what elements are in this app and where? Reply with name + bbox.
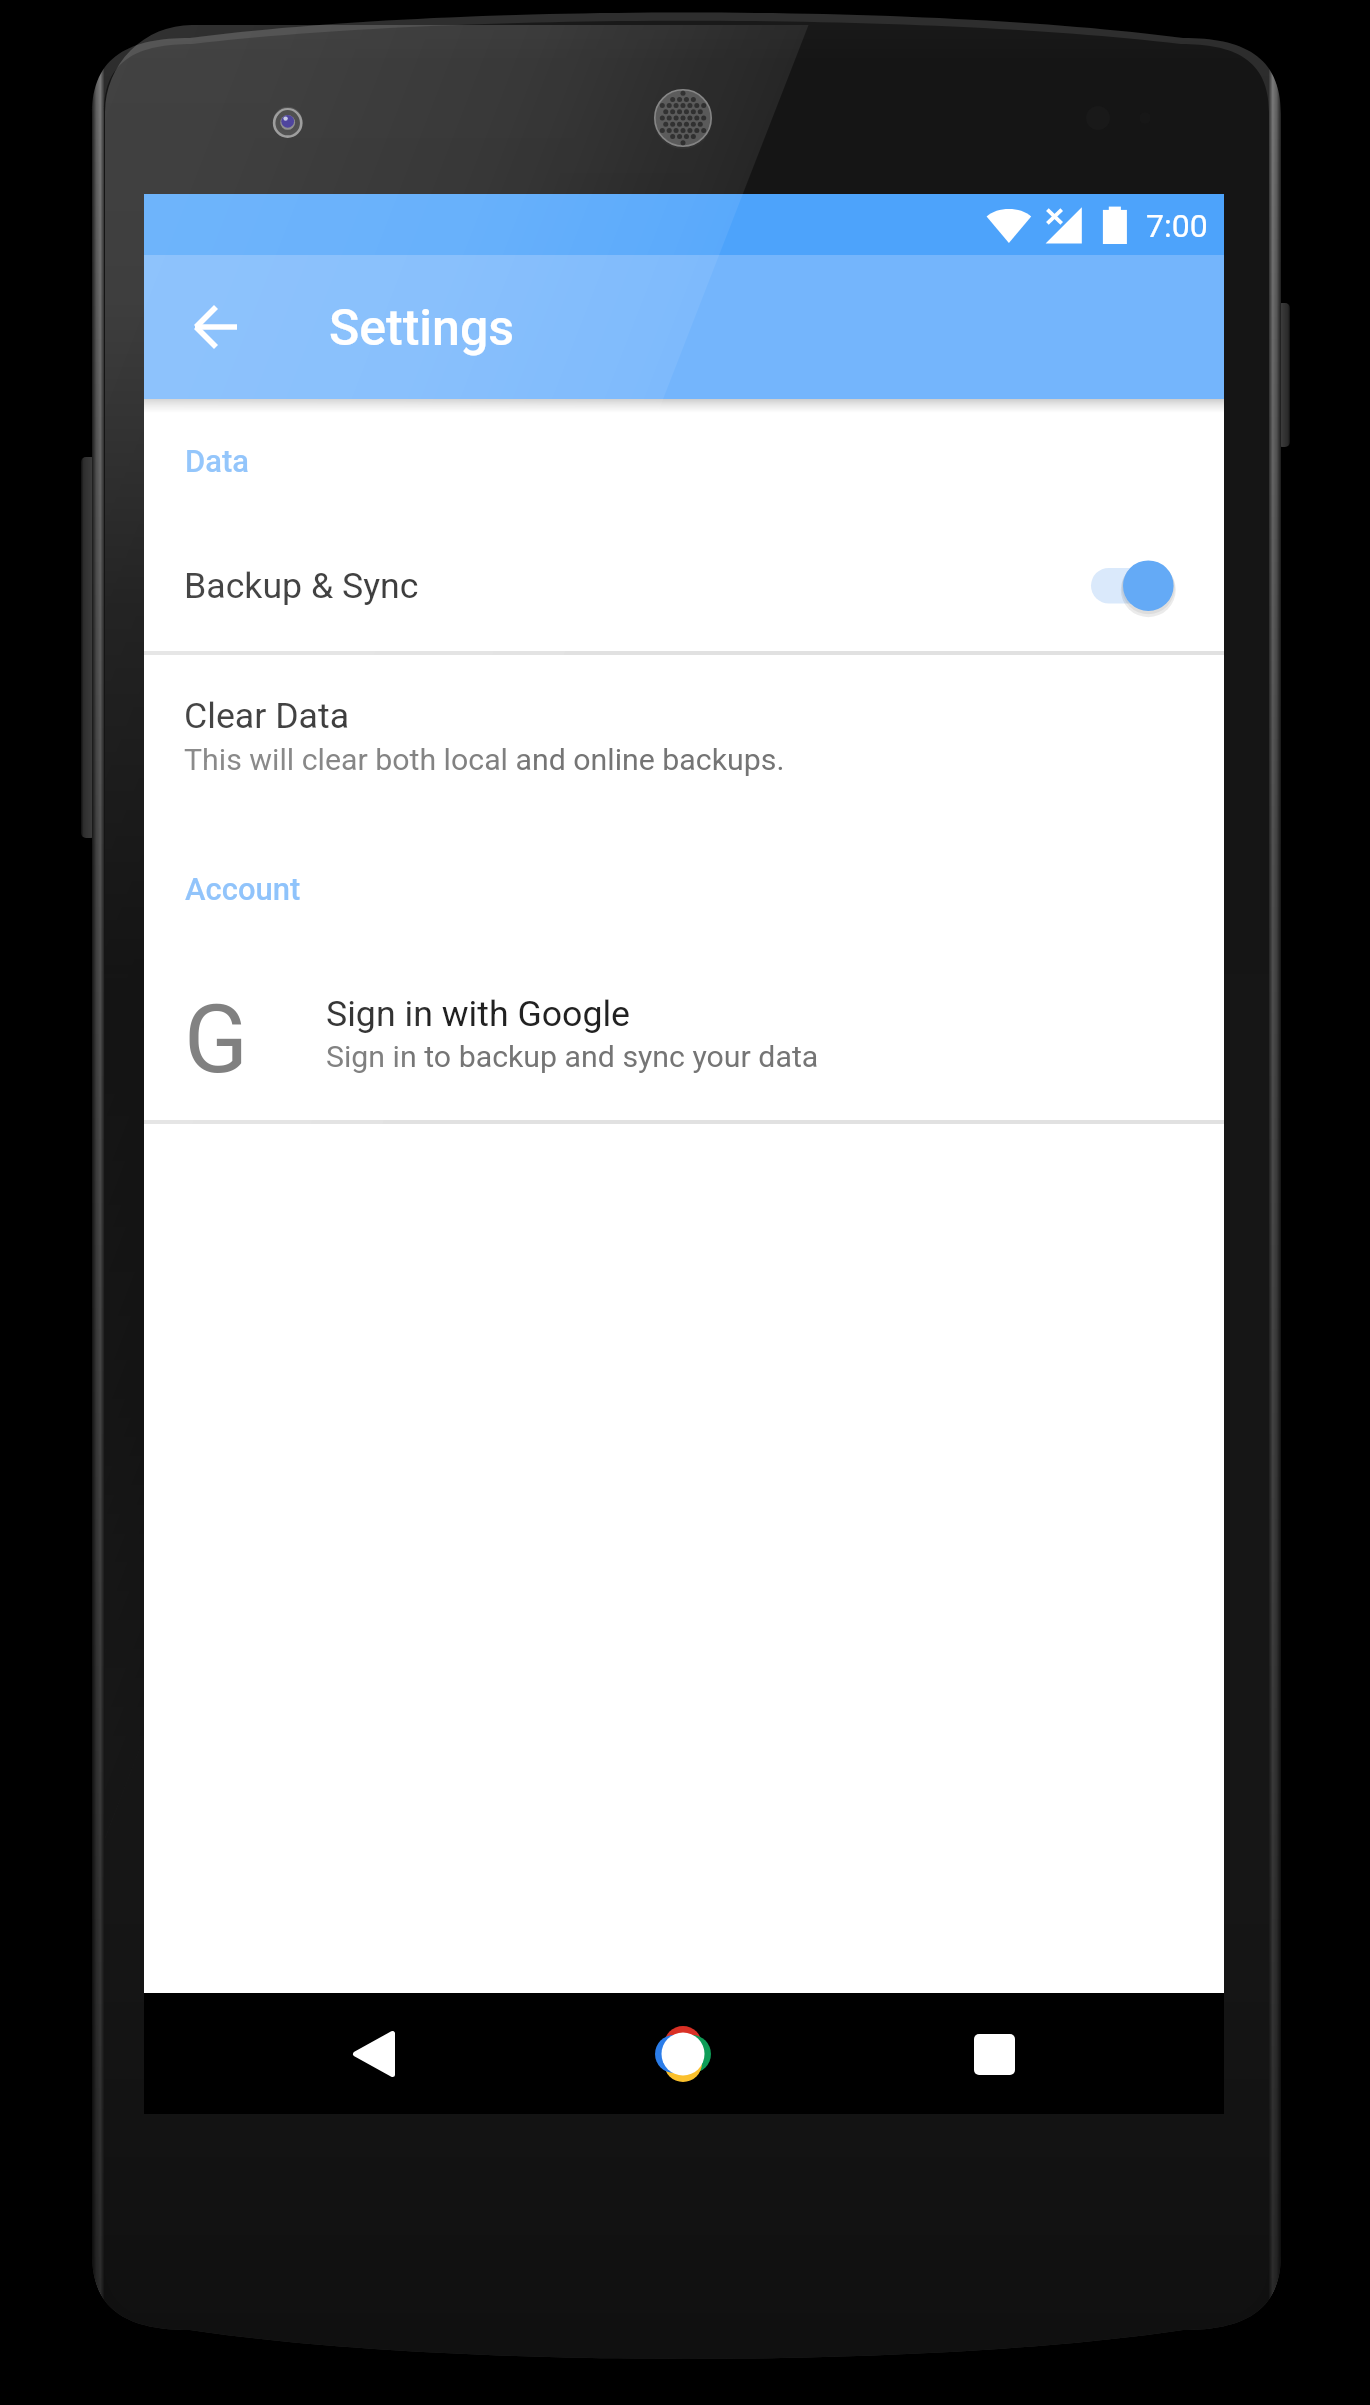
- button[interactable]: Home: [623, 1994, 743, 2114]
- staticText: This will clear both local and online ba…: [184, 742, 785, 778]
- button[interactable]: G: [144, 959, 1224, 1120]
- button[interactable]: Navigate up: [144, 255, 288, 399]
- staticText: Sign in to backup and sync your data: [326, 1039, 819, 1075]
- button[interactable]: Recent apps: [934, 1994, 1054, 2114]
- button[interactable]: Back: [314, 1994, 434, 2114]
- staticText: Settings: [329, 299, 515, 358]
- staticText: Account: [185, 871, 301, 907]
- staticText: Clear Data: [184, 695, 350, 737]
- staticText: Sign in with Google: [326, 993, 631, 1035]
- button[interactable]: Clear Data: [144, 655, 1224, 810]
- staticText: 7:00: [1146, 207, 1208, 245]
- button[interactable]: Backup & Sync: [144, 525, 1224, 651]
- staticText: G: [184, 985, 249, 1095]
- staticText: Backup & Sync: [184, 565, 419, 607]
- staticText: Data: [185, 443, 249, 479]
- button[interactable]: Backup and sync toggle: [1074, 545, 1184, 625]
